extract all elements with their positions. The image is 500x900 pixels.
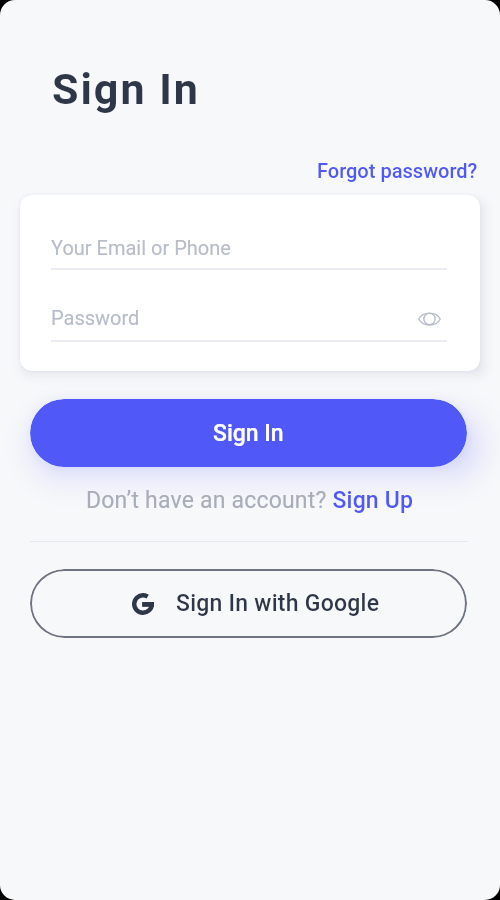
button[interactable]: Your Email or Phone [43, 225, 457, 279]
staticText: Your Email or Phone [51, 236, 231, 259]
button[interactable]: Don’t have an account? Sign Up [86, 487, 414, 514]
button[interactable]: Sign In with Google [30, 569, 467, 638]
staticText: Sign In [213, 420, 284, 447]
staticText: Don’t have an account? Sign Up [86, 487, 414, 514]
staticText: Password [51, 306, 140, 329]
button[interactable]: Password [43, 297, 457, 351]
button[interactable]: Sign In [30, 399, 467, 467]
staticText: Forgot password? [317, 159, 478, 182]
staticText: Sign In [52, 64, 200, 114]
staticText: Sign In with Google [176, 590, 380, 617]
button[interactable]: Show password [413, 303, 445, 335]
button[interactable]: Forgot password? [309, 155, 470, 178]
